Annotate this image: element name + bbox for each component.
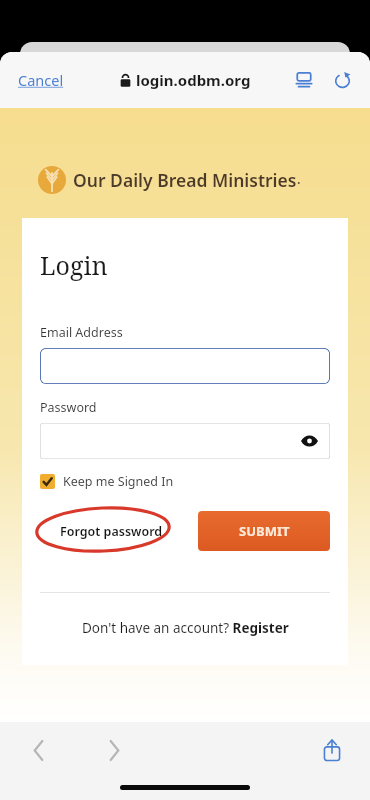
staticText: Password bbox=[40, 399, 97, 416]
button[interactable]: Show password bbox=[298, 430, 320, 452]
staticText: Email Address bbox=[40, 324, 123, 341]
button[interactable]: Page settings bbox=[290, 66, 318, 94]
button[interactable]: Keep me Signed In bbox=[40, 473, 174, 490]
button[interactable]: Back bbox=[22, 734, 54, 766]
button[interactable]: Forgot password bbox=[56, 519, 167, 544]
button[interactable]: Forward bbox=[98, 734, 130, 766]
staticText: Don't have an account? Register bbox=[82, 619, 289, 637]
staticText: Login bbox=[40, 248, 108, 282]
button[interactable]: SUBMIT bbox=[198, 511, 330, 551]
staticText: SUBMIT bbox=[239, 522, 290, 540]
button[interactable]: Cancel bbox=[14, 66, 68, 94]
staticText: Cancel bbox=[18, 70, 64, 90]
button[interactable]: Show password bbox=[40, 423, 330, 459]
staticText: login.odbm.org bbox=[136, 70, 251, 90]
staticText: Our Daily Bread Ministries bbox=[73, 168, 297, 192]
staticText: Keep me Signed In bbox=[63, 473, 174, 490]
button[interactable] bbox=[40, 348, 330, 384]
button[interactable]: Don't have an account? Register bbox=[40, 619, 330, 637]
staticText: Forgot password bbox=[60, 523, 163, 540]
button[interactable]: Our Daily Bread Ministries bbox=[38, 166, 370, 194]
button[interactable]: Reload bbox=[328, 66, 356, 94]
button[interactable]: Share bbox=[316, 734, 348, 766]
staticText: . bbox=[297, 170, 301, 188]
